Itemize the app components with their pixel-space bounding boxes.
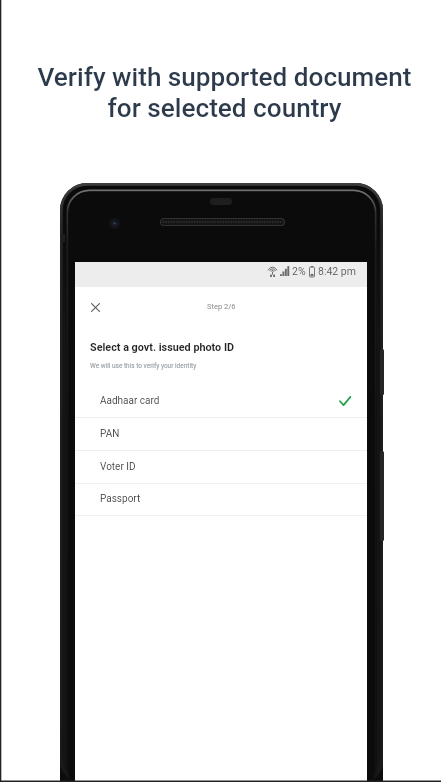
button[interactable]: PAN: [75, 418, 367, 450]
staticText: Select a govt. issued photo ID: [90, 341, 235, 354]
staticText: PAN: [100, 428, 120, 440]
staticText: Passport: [100, 493, 141, 505]
button[interactable]: Voter ID: [75, 450, 367, 483]
button[interactable]: Passport: [75, 483, 367, 515]
staticText: Aadhaar card: [100, 395, 160, 407]
staticText: We will use this to verify your identity: [90, 362, 197, 370]
staticText: 2%: [292, 265, 306, 277]
staticText: Step 2/6: [207, 302, 236, 311]
button[interactable]: Close: [83, 295, 107, 319]
staticText: Verify with supported document for selec…: [37, 62, 412, 123]
button[interactable]: Aadhaar card: [75, 385, 367, 417]
staticText: Voter ID: [100, 461, 136, 473]
staticText: 8:42 pm: [318, 265, 356, 277]
